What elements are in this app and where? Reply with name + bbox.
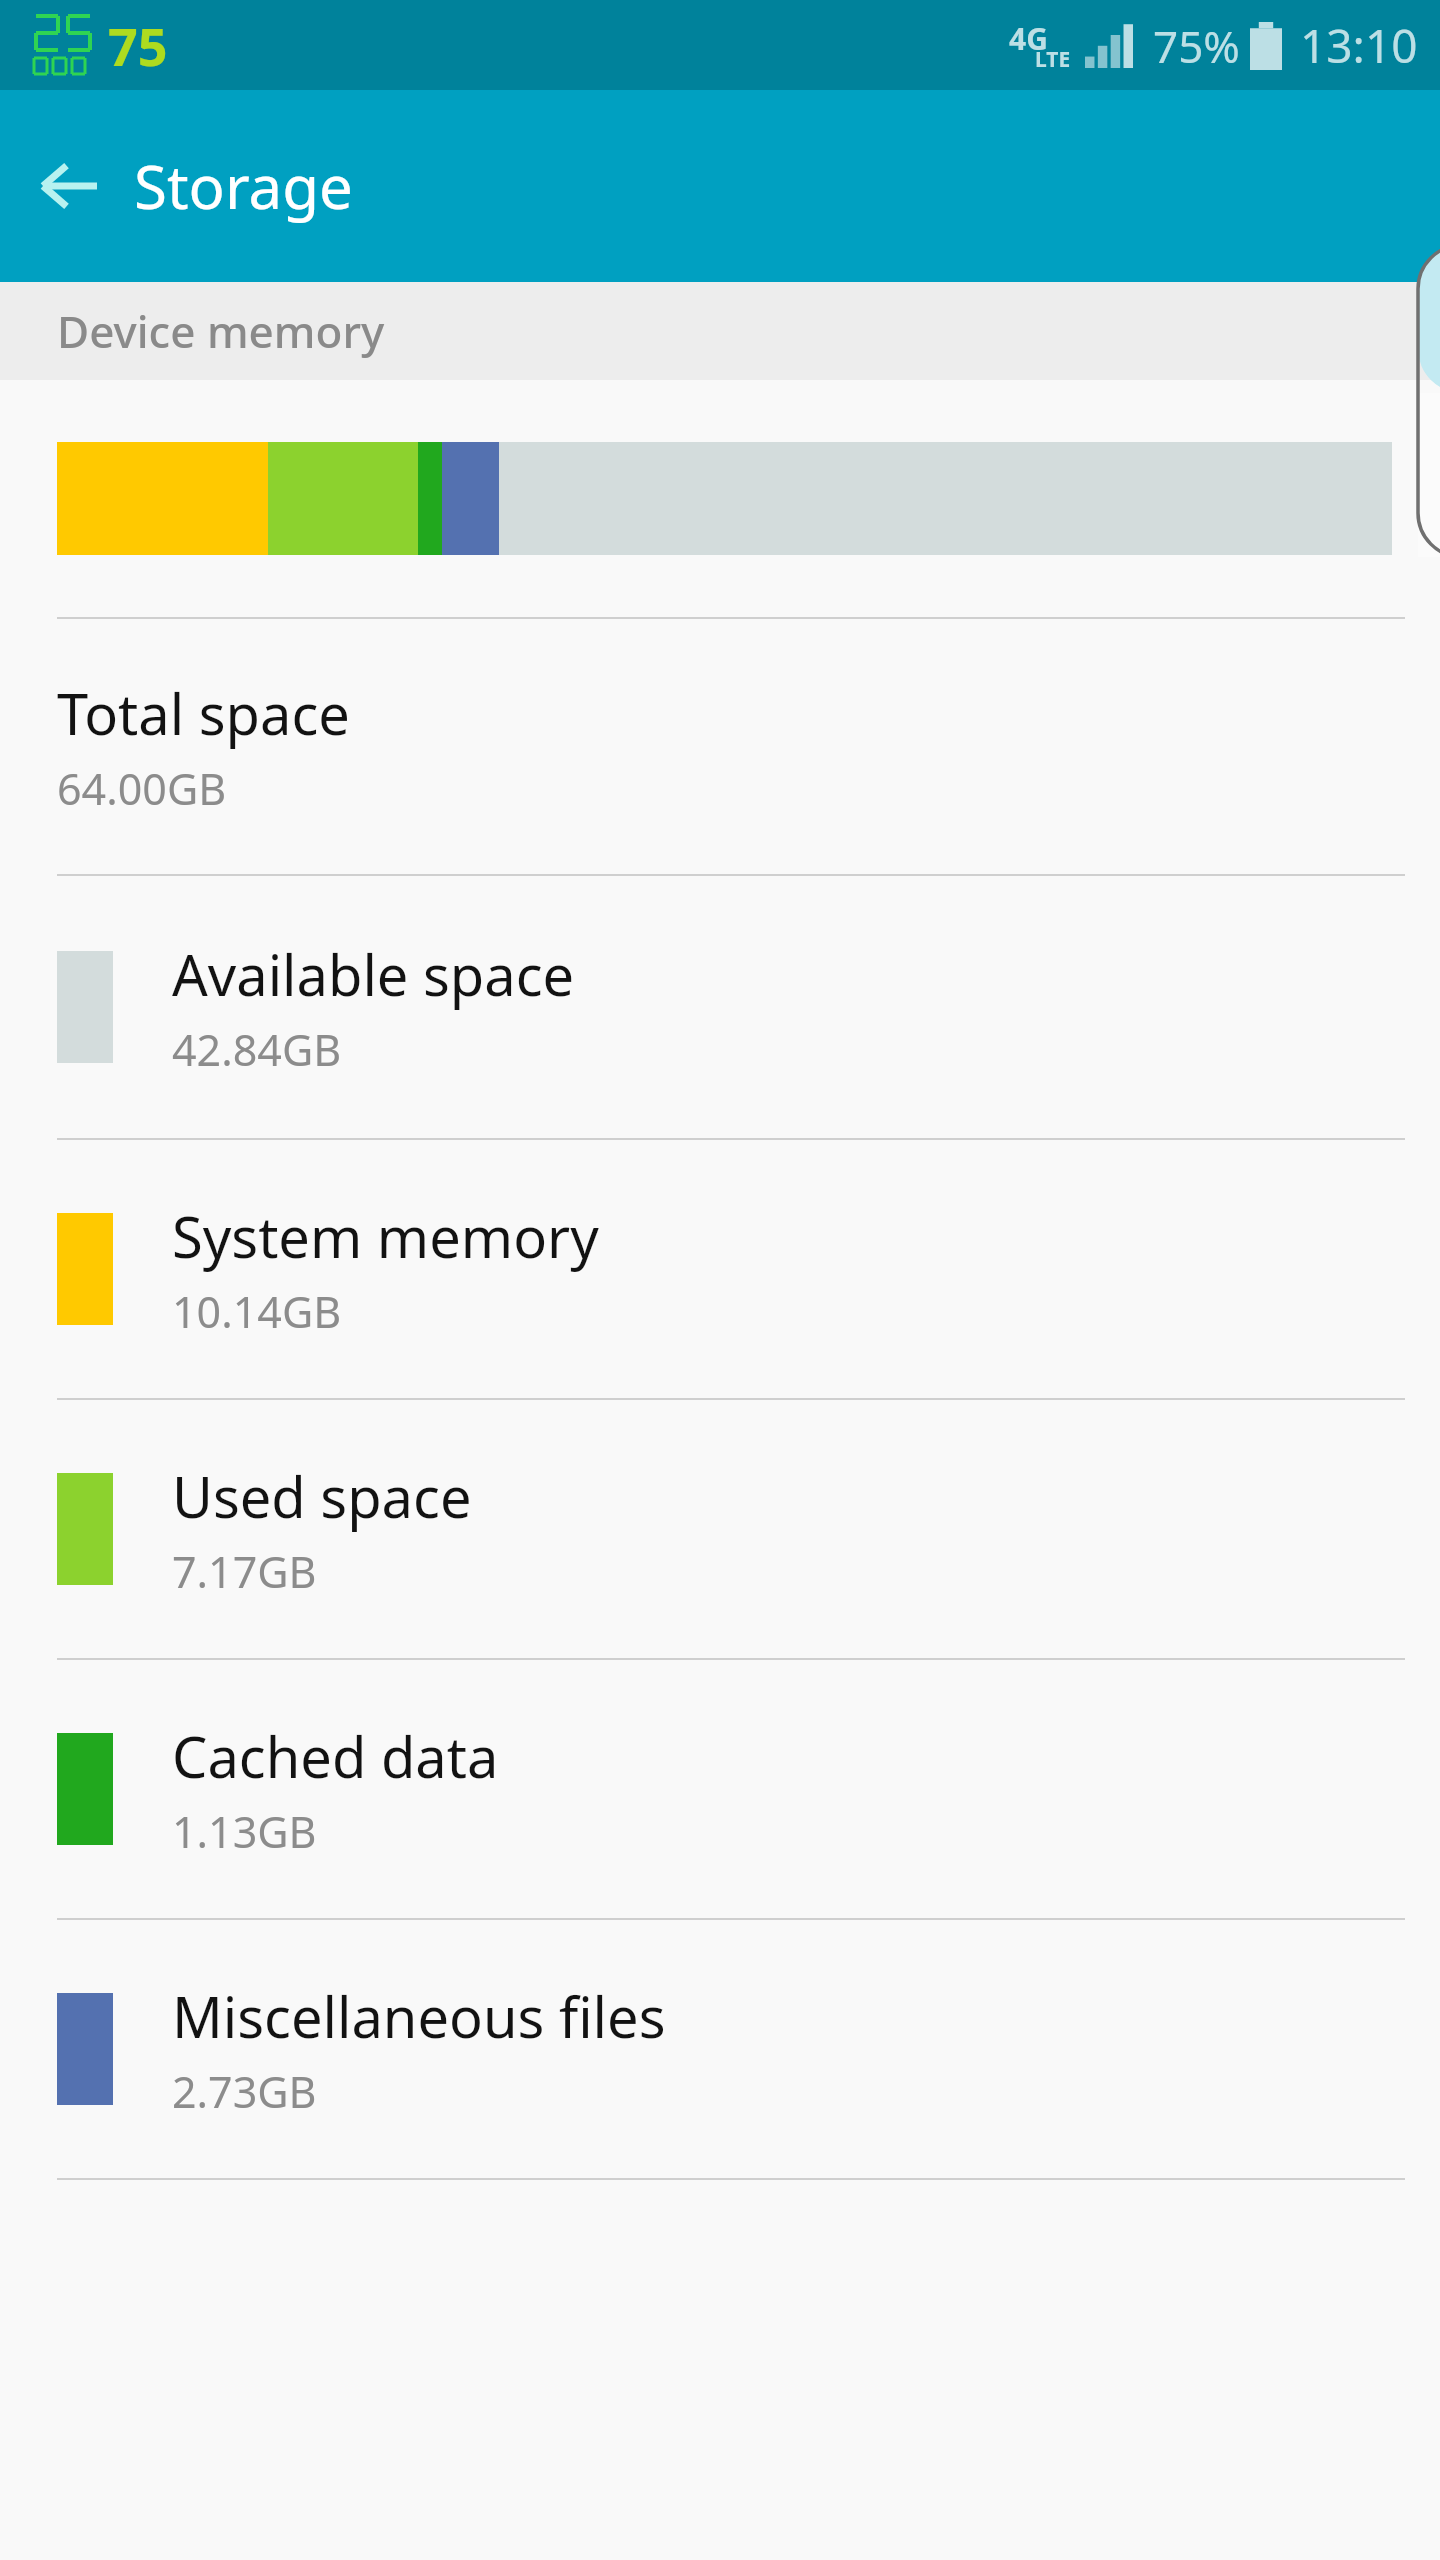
staticText: 75	[108, 10, 168, 81]
staticText: 13:10	[1300, 14, 1418, 77]
button[interactable]: Used space	[0, 1400, 1440, 1658]
staticText: 64.00GB	[57, 759, 227, 818]
staticText: 75%	[1153, 16, 1240, 76]
button[interactable]: System memory	[0, 1140, 1440, 1398]
staticText: 10.14GB	[172, 1282, 342, 1341]
staticText: 4G	[1009, 18, 1048, 59]
button[interactable]: Available space	[0, 876, 1440, 1138]
staticText: Storage	[134, 145, 353, 227]
button[interactable]: Navigate up	[22, 138, 118, 234]
staticText: Miscellaneous files	[172, 1978, 666, 2054]
button[interactable]: Miscellaneous files	[0, 1920, 1440, 2178]
staticText: Cached data	[172, 1718, 499, 1794]
staticText: LTE	[1035, 45, 1071, 74]
staticText: Used space	[172, 1458, 472, 1534]
staticText: 1.13GB	[172, 1802, 317, 1861]
staticText: Available space	[172, 936, 575, 1012]
staticText: 7.17GB	[172, 1542, 317, 1601]
staticText: Total space	[57, 675, 350, 751]
staticText: 2.73GB	[172, 2062, 317, 2121]
staticText: 42.84GB	[172, 1020, 342, 1079]
button[interactable]: Total space	[0, 619, 1440, 874]
staticText: Device memory	[57, 301, 385, 361]
button[interactable]: Cached data	[0, 1660, 1440, 1918]
staticText: System memory	[172, 1198, 599, 1274]
